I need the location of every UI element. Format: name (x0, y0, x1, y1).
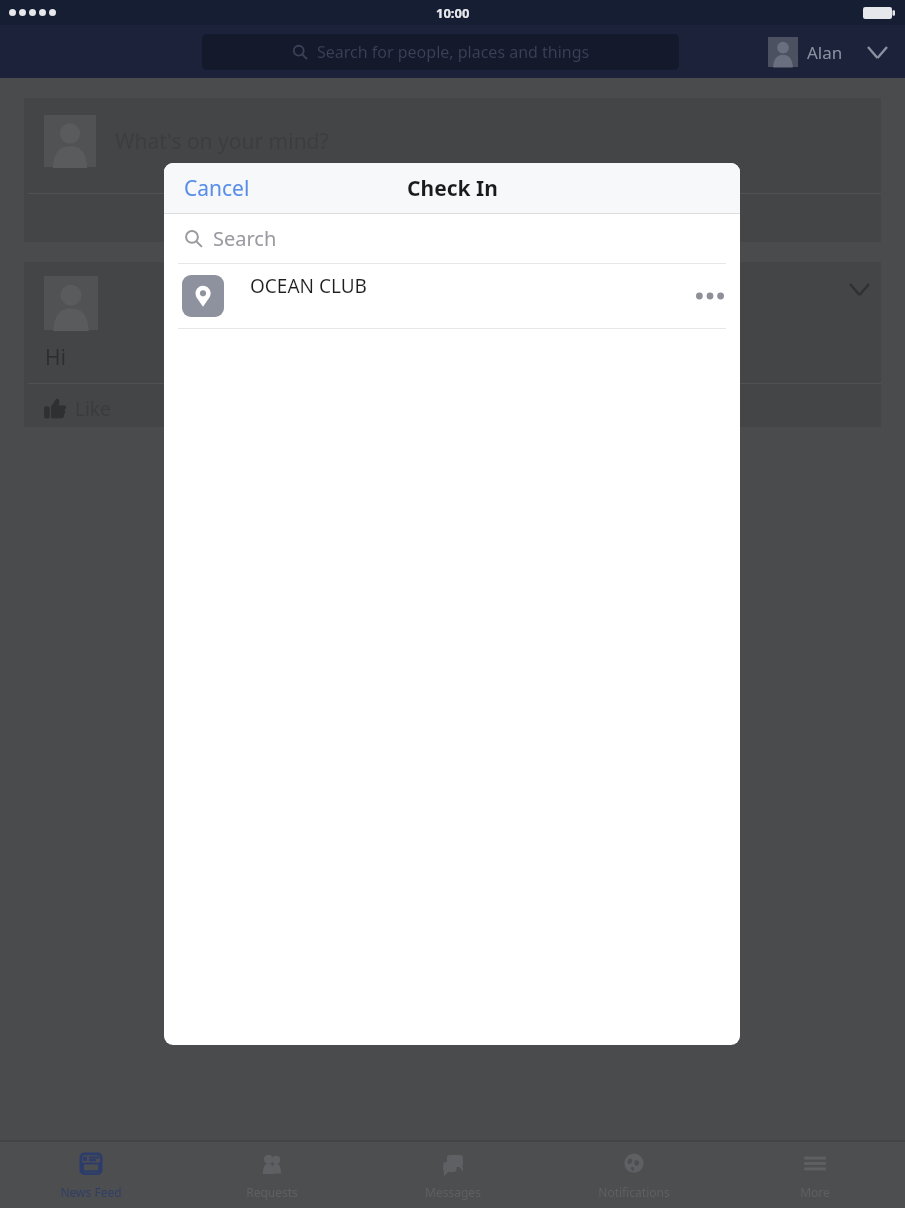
button[interactable]: Search for people, places and things (202, 34, 679, 70)
staticText: News Feed (60, 1184, 122, 1200)
button[interactable]: Notifications (543, 1142, 724, 1208)
staticText: OCEAN CLUB (250, 273, 367, 299)
button[interactable]: Cancel (172, 166, 262, 211)
button[interactable]: News Feed (0, 1142, 181, 1208)
button[interactable]: Requests (181, 1142, 362, 1208)
staticText: Like (75, 396, 111, 422)
staticText: Alan (807, 41, 843, 64)
staticText: Hi (45, 343, 66, 372)
button[interactable]: OCEAN CLUB (164, 264, 740, 328)
staticText: Search (213, 225, 277, 252)
staticText: Cancel (184, 174, 250, 203)
staticText: 10:00 (436, 4, 470, 22)
button[interactable]: Search (164, 214, 740, 263)
staticText: Requests (246, 1184, 298, 1200)
button[interactable]: More actions (688, 274, 732, 318)
staticText: More (800, 1184, 830, 1200)
button[interactable]: Messages (362, 1142, 543, 1208)
staticText: Check In (407, 174, 498, 203)
staticText: Messages (425, 1184, 481, 1200)
staticText: Notifications (598, 1184, 670, 1200)
staticText: Search for people, places and things (317, 41, 590, 63)
button[interactable]: More options (857, 32, 897, 72)
